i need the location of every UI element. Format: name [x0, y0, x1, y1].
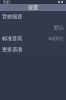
staticText: 9:41 [3, 0, 10, 5]
staticText: 更多选项 [2, 46, 22, 53]
staticText: 音效描述 [2, 13, 22, 20]
staticText: 440Hz [48, 35, 64, 42]
staticText: 标准音高 [2, 35, 22, 42]
staticText: 设置 [28, 4, 38, 11]
staticText: 默认 [54, 24, 64, 31]
